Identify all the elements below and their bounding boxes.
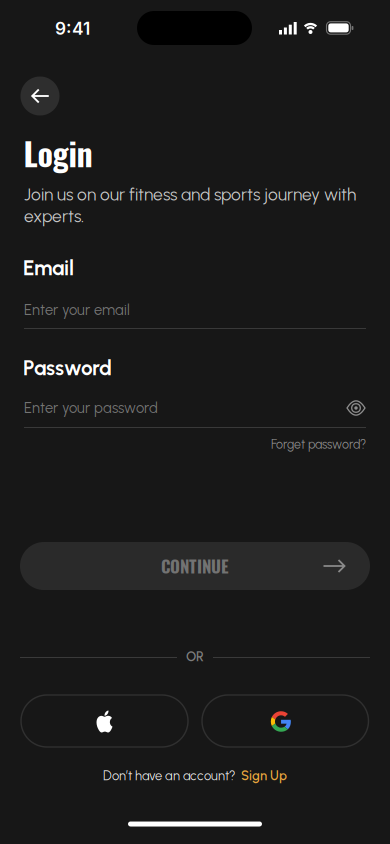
button[interactable]: Sign Up — [241, 768, 287, 783]
button[interactable]: Continue with Google — [202, 695, 368, 747]
staticText: Join us on our fitness and sports journe… — [24, 184, 356, 227]
staticText: Enter your password — [24, 399, 158, 417]
button[interactable]: Continue with Apple — [21, 695, 188, 747]
button[interactable]: Show password — [344, 396, 368, 420]
staticText: Password — [23, 355, 112, 380]
staticText: Forget password? — [271, 437, 366, 452]
staticText: Sign Up — [241, 768, 287, 783]
staticText: CONTINUE — [161, 553, 229, 578]
staticText: Email — [23, 255, 74, 280]
staticText: 9:41 — [55, 18, 90, 39]
staticText: Login — [23, 129, 92, 176]
button[interactable]: Forget password? — [271, 437, 366, 452]
button[interactable]: CONTINUE — [20, 542, 370, 590]
staticText: OR — [186, 648, 204, 664]
staticText: Don’t have an account? — [103, 768, 235, 783]
button[interactable]: Back — [20, 76, 59, 115]
staticText: Enter your email — [24, 301, 130, 319]
